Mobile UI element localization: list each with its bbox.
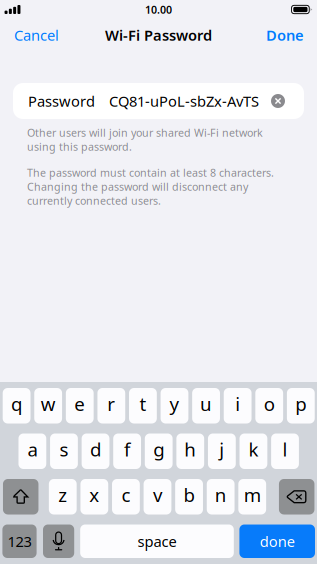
button[interactable]: d: [82, 433, 109, 469]
button[interactable]: l: [271, 433, 299, 469]
staticText: Wi-Fi Password: [105, 25, 212, 45]
button[interactable]: q: [3, 388, 30, 423]
button[interactable]: w: [34, 388, 62, 423]
staticText: 123: [7, 531, 31, 551]
staticText: Password: [28, 91, 95, 111]
staticText: d: [90, 437, 101, 462]
button[interactable]: p: [287, 388, 315, 423]
staticText: r: [107, 391, 115, 416]
button[interactable]: Done: [253, 22, 317, 48]
staticText: g: [153, 437, 164, 462]
staticText: Other users will join your shared Wi-Fi …: [27, 125, 263, 140]
staticText: b: [184, 482, 195, 507]
staticText: CQ81-uPoL-sbZx-AvTS: [109, 91, 259, 111]
staticText: n: [215, 482, 227, 507]
staticText: h: [184, 437, 196, 462]
staticText: v: [153, 482, 162, 507]
button[interactable]: Cancel: [0, 22, 73, 48]
staticText: q: [11, 391, 22, 416]
staticText: i: [235, 391, 240, 416]
button[interactable]: Password: [0, 83, 317, 119]
button[interactable]: o: [255, 388, 283, 423]
button[interactable]: i: [224, 388, 252, 423]
button[interactable]: s: [50, 433, 78, 469]
button[interactable]: j: [208, 433, 236, 469]
staticText: m: [244, 482, 261, 507]
button[interactable]: n: [207, 479, 235, 514]
button[interactable]: a: [18, 433, 46, 469]
staticText: x: [89, 482, 99, 507]
button[interactable]: h: [176, 433, 204, 469]
staticText: The password must contain at least 8 cha…: [27, 165, 274, 180]
button[interactable]: y: [161, 388, 188, 423]
button[interactable]: e: [66, 388, 94, 423]
staticText: c: [121, 482, 130, 507]
staticText: space: [137, 531, 176, 551]
button[interactable]: m: [238, 479, 266, 514]
button[interactable]: done: [239, 524, 315, 558]
staticText: done: [260, 531, 295, 551]
staticText: j: [219, 437, 224, 462]
staticText: u: [200, 391, 212, 416]
staticText: z: [58, 482, 67, 507]
button[interactable]: Dictation: [43, 524, 74, 558]
button[interactable]: f: [113, 433, 141, 469]
staticText: using this password.: [27, 139, 132, 154]
staticText: currently connected users.: [27, 193, 161, 208]
staticText: k: [248, 437, 258, 462]
staticText: Cancel: [14, 25, 59, 45]
staticText: e: [74, 391, 85, 416]
staticText: a: [27, 437, 37, 462]
button[interactable]: z: [49, 479, 77, 514]
staticText: o: [264, 391, 275, 416]
staticText: y: [169, 391, 179, 416]
button[interactable]: v: [144, 479, 171, 514]
button[interactable]: 123: [2, 524, 37, 558]
button[interactable]: r: [97, 388, 125, 423]
staticText: Changing the password will disconnect an…: [27, 179, 248, 194]
staticText: p: [295, 391, 306, 416]
staticText: s: [59, 437, 68, 462]
button[interactable]: u: [192, 388, 220, 423]
staticText: 10.00: [145, 2, 172, 17]
staticText: Done: [266, 25, 304, 45]
button[interactable]: g: [145, 433, 173, 469]
button[interactable]: space: [80, 524, 234, 558]
staticText: l: [282, 437, 287, 462]
button[interactable]: b: [175, 479, 203, 514]
button[interactable]: x: [80, 479, 108, 514]
button[interactable]: c: [112, 479, 140, 514]
button[interactable]: Delete: [279, 479, 314, 514]
staticText: w: [41, 391, 56, 416]
staticText: f: [124, 437, 130, 462]
button[interactable]: t: [129, 388, 157, 423]
button[interactable]: Shift: [3, 479, 38, 514]
staticText: t: [139, 391, 146, 416]
button[interactable]: k: [239, 433, 267, 469]
